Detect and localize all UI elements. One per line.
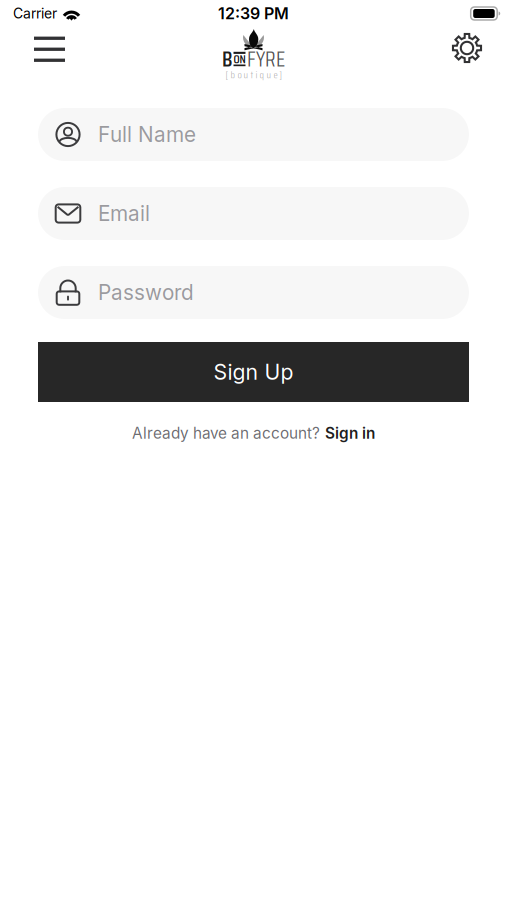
staticText: B (222, 42, 232, 76)
button[interactable]: Already have an account? (132, 418, 375, 449)
staticText: FYRE (247, 42, 285, 76)
staticText: Email (98, 201, 150, 226)
staticText: Password (98, 280, 194, 305)
staticText: [boutique] (225, 67, 281, 83)
staticText: ON (233, 50, 245, 68)
button[interactable]: Sign Up (38, 342, 469, 402)
staticText: Sign Up (213, 359, 293, 385)
staticText: Sign in (325, 424, 375, 443)
button[interactable]: Menu (20, 28, 79, 84)
staticText: Full Name (98, 122, 196, 147)
staticText: Carrier (13, 5, 57, 22)
staticText: Already have an account? (132, 424, 320, 443)
staticText: 12:39 PM (218, 4, 289, 23)
button[interactable]: Settings (440, 27, 494, 85)
